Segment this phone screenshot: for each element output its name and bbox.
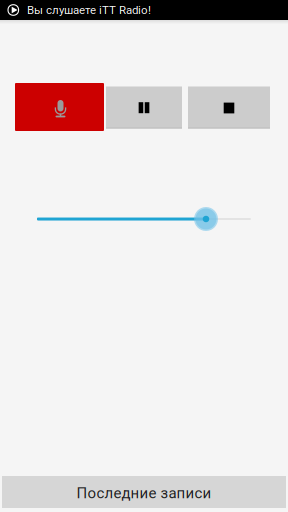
- button[interactable]: Pause: [106, 86, 182, 128]
- button[interactable]: Stop: [188, 86, 270, 128]
- staticText: Последние записи: [76, 484, 211, 502]
- button[interactable]: Последние записи: [2, 476, 286, 508]
- button[interactable]: Вы слушаете iTT Radio!: [0, 0, 288, 20]
- staticText: Вы слушаете iTT Radio!: [27, 3, 151, 17]
- button[interactable]: Record: [15, 83, 104, 131]
